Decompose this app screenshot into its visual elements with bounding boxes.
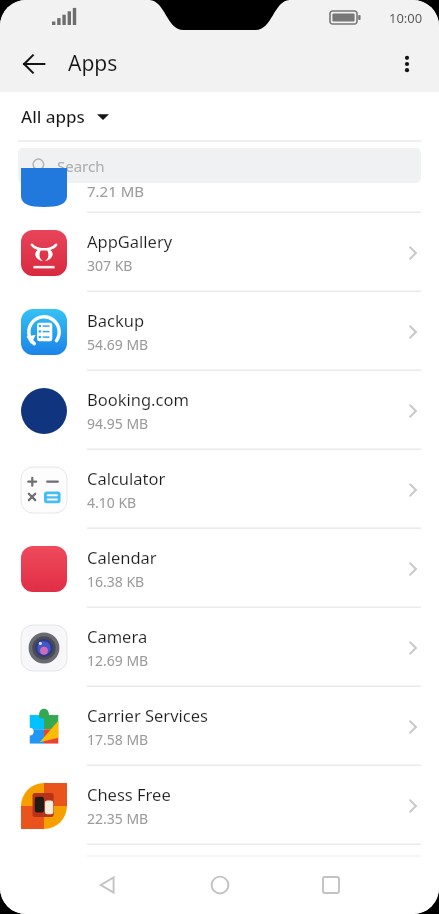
staticText: 7.21 MB [87,181,145,201]
staticText: Chess Free [87,783,171,805]
staticText: Apps [68,49,118,78]
staticText: 94.95 MB [87,414,149,433]
staticText: Camera [87,625,148,647]
staticText: All apps [21,105,85,128]
button[interactable]: Back [84,861,132,909]
staticText: Calendar [87,546,157,568]
staticText: 4.10 KB [87,493,137,512]
button[interactable]: Chess Free [0,766,439,845]
staticText: Search [57,156,105,176]
button[interactable]: Camera [0,608,439,687]
staticText: 16.38 KB [87,572,145,591]
staticText: 54.69 MB [87,335,149,354]
button[interactable]: Calculator [0,450,439,529]
staticText: 22.35 MB [87,809,149,828]
button[interactable]: AppGallery [0,213,439,292]
button[interactable]: Carrier Services [0,687,439,766]
button[interactable]: 7.21 MB [0,188,439,213]
staticText: 17.58 MB [87,730,149,749]
staticText: 10:00 [389,9,423,27]
staticText: AppGallery [87,230,173,252]
button[interactable]: Booking.com [0,371,439,450]
button[interactable]: Calendar [0,529,439,608]
staticText: Backup [87,309,145,331]
button[interactable]: More options [385,42,429,86]
button[interactable]: All apps [0,92,439,141]
button[interactable]: Back [12,42,56,86]
staticText: 307 KB [87,256,133,275]
staticText: Calculator [87,467,166,489]
staticText: 12.69 MB [87,651,149,670]
button[interactable]: Recents [307,861,355,909]
staticText: Carrier Services [87,704,208,726]
button[interactable]: Home [196,861,244,909]
button[interactable]: Search [18,148,421,183]
staticText: Booking.com [87,388,189,410]
button[interactable]: Backup [0,292,439,371]
